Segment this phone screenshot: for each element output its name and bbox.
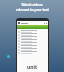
button[interactable] xyxy=(18,33,47,36)
staticText: relevant to your text xyxy=(16,8,49,12)
button[interactable] xyxy=(18,45,47,48)
staticText: Watch videos xyxy=(21,3,43,7)
button[interactable] xyxy=(18,39,47,42)
button[interactable] xyxy=(18,48,47,51)
button[interactable] xyxy=(7,55,10,58)
staticText: unit xyxy=(27,64,38,71)
button[interactable] xyxy=(18,36,47,39)
button[interactable] xyxy=(18,30,47,33)
button[interactable] xyxy=(18,51,47,54)
button[interactable] xyxy=(18,42,47,45)
